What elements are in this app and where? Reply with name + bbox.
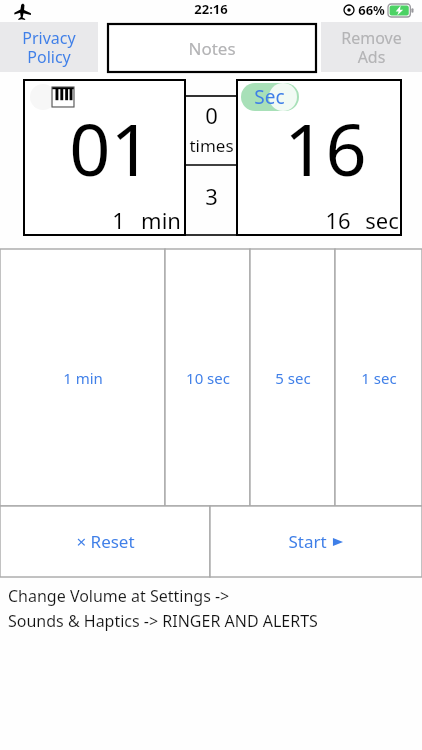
button[interactable]: 3 (185, 166, 238, 234)
button[interactable]: Toggle piano sound (30, 84, 78, 110)
staticText: 1 (112, 205, 125, 235)
button[interactable]: 5 sec (250, 249, 335, 506)
button[interactable]: 10 sec (165, 249, 250, 506)
button[interactable]: 16 (237, 80, 401, 235)
button[interactable]: Privacy Policy (0, 22, 98, 72)
staticText: Start (288, 530, 327, 553)
button[interactable]: × Reset (0, 506, 210, 577)
staticText: 1 sec (361, 368, 397, 388)
staticText: 3 (185, 181, 238, 211)
staticText: Change Volume at Settings -> (8, 585, 230, 607)
button[interactable]: 1 sec (335, 249, 422, 506)
staticText: Notes (188, 37, 236, 60)
staticText: 1 min (63, 368, 103, 388)
button[interactable]: Remove Ads (321, 22, 422, 72)
staticText: 22:16 (194, 0, 228, 18)
staticText: Sounds & Haptics -> RINGER AND ALERTS (8, 610, 318, 632)
button[interactable]: 01 (24, 80, 185, 235)
staticText: 5 sec (275, 368, 311, 388)
staticText: Remove Ads (341, 27, 402, 68)
staticText: times (185, 134, 238, 157)
staticText: min (141, 205, 181, 235)
staticText: sec (365, 205, 399, 235)
staticText: Privacy Policy (22, 27, 76, 68)
staticText: 16 (325, 205, 351, 235)
button[interactable]: Seconds mode on (241, 83, 299, 111)
button[interactable]: Start (210, 506, 422, 577)
staticText: Sec (254, 84, 285, 110)
staticText: 10 sec (186, 368, 230, 388)
staticText: 66% (358, 1, 385, 19)
staticText: 16 (284, 99, 367, 197)
button[interactable]: Notes (108, 24, 316, 72)
button[interactable]: 0 (185, 96, 238, 165)
staticText: × Reset (76, 530, 135, 553)
button[interactable]: 1 min (0, 249, 165, 506)
staticText: 0 (185, 100, 238, 130)
staticText: 01 (69, 99, 152, 197)
